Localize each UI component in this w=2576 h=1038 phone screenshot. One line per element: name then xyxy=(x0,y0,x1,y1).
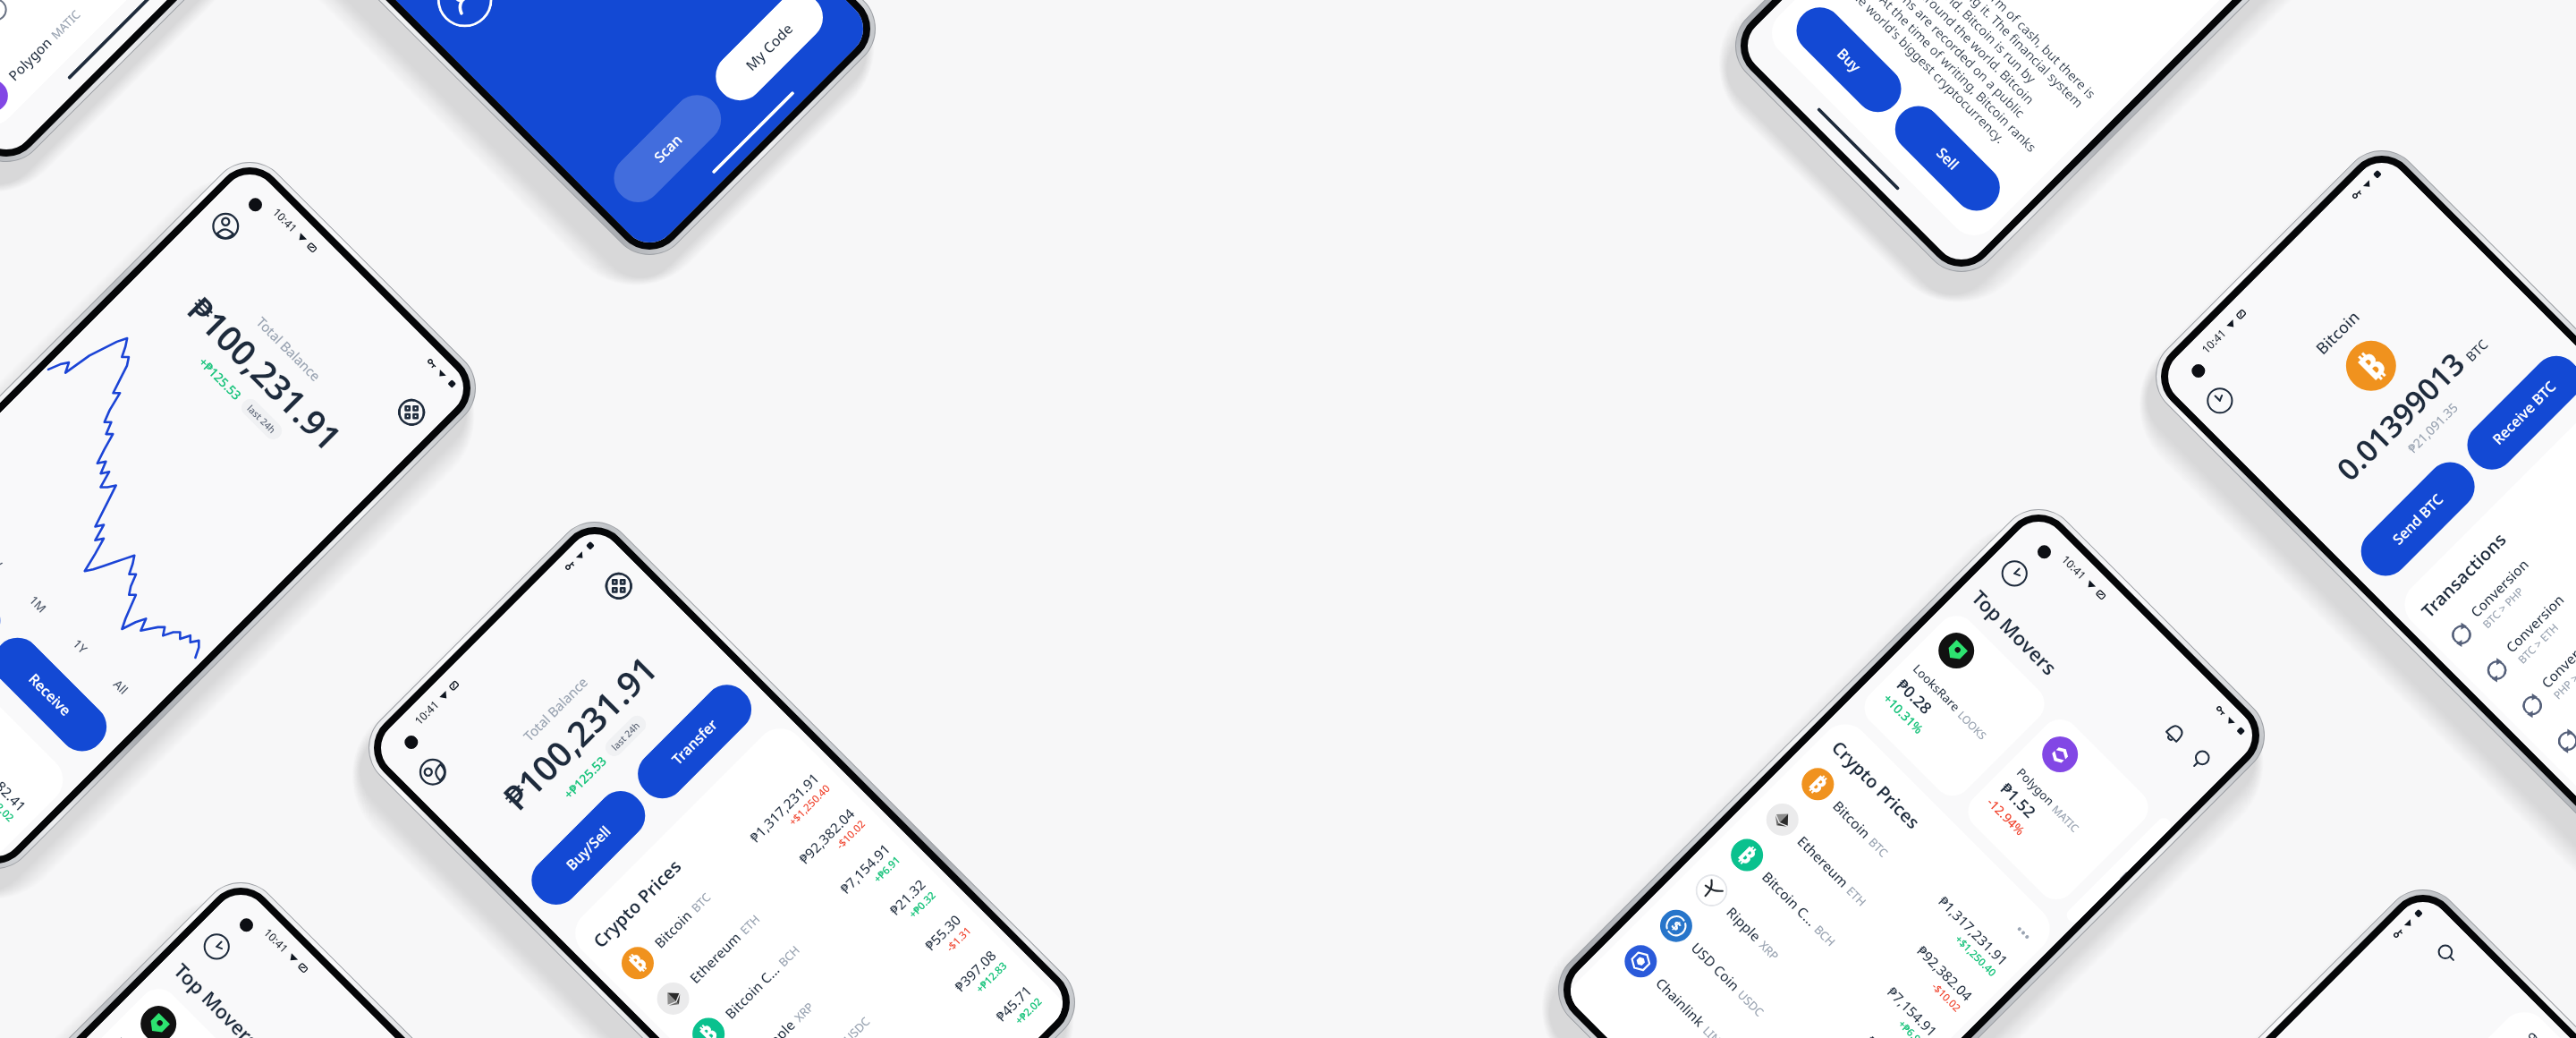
staticText: Bitcoin C... xyxy=(721,960,783,1023)
staticText: 10:41 xyxy=(2058,552,2090,584)
staticText: Bitcoin C... xyxy=(1758,867,1821,930)
button[interactable]: Ethereum xyxy=(0,636,2,853)
button[interactable]: Conversion xyxy=(2436,430,2576,661)
staticText: Polygon xyxy=(2013,765,2058,809)
button[interactable]: Ripple xyxy=(1682,861,1913,1038)
staticText: Receive xyxy=(25,669,76,720)
button[interactable]: Profile xyxy=(207,207,245,245)
button[interactable]: History xyxy=(198,928,236,966)
staticText: 1Y xyxy=(69,636,91,657)
staticText: Transfer xyxy=(667,714,722,769)
staticText: ₱21.32 xyxy=(885,875,929,919)
staticText: USD Coin xyxy=(1688,938,1744,995)
button[interactable]: Portfolio xyxy=(0,0,17,31)
button[interactable]: Ethereum xyxy=(1753,790,1984,1021)
staticText: ••• xyxy=(2011,920,2037,946)
button[interactable]: LooksRare xyxy=(59,981,255,1038)
button[interactable]: ₿ xyxy=(2064,815,2174,925)
staticText: LINK xyxy=(1700,1023,1730,1038)
staticText: ₱0.28 xyxy=(1892,674,1937,720)
staticText: ₱100,231.91 xyxy=(492,645,667,819)
button[interactable]: 1M xyxy=(14,580,62,629)
button[interactable]: ₿ xyxy=(679,833,910,1038)
staticText: 1W xyxy=(0,548,6,572)
button[interactable]: Buy/Sell xyxy=(522,781,655,914)
button[interactable]: Search xyxy=(2183,742,2219,778)
button[interactable]: ₿ xyxy=(1718,826,1948,1038)
button[interactable]: Conversion xyxy=(2471,466,2576,696)
staticText: LooksRare xyxy=(112,1034,166,1038)
staticText: XRP xyxy=(1756,937,1782,964)
button[interactable]: Scan xyxy=(604,85,731,212)
button[interactable]: Ethereum xyxy=(644,797,874,1028)
staticText: BCH xyxy=(1811,921,1839,950)
button[interactable]: $ xyxy=(750,904,980,1038)
button[interactable]: Conversion xyxy=(2506,501,2576,732)
staticText: USDC xyxy=(1734,987,1768,1020)
staticText: Top Movers xyxy=(169,957,265,1038)
staticText: Conversion xyxy=(2501,590,2568,656)
staticText: 0.01399013 xyxy=(2327,343,2473,489)
button[interactable]: Chainlink xyxy=(786,939,1016,1038)
staticText: ₱21,091.35 xyxy=(2404,399,2461,456)
staticText: Ripple xyxy=(756,1015,799,1038)
staticText: Bitcoin xyxy=(650,905,696,952)
button[interactable]: ₿ xyxy=(2328,1021,2558,1038)
button[interactable]: Search xyxy=(2430,935,2465,971)
staticText: ₱7,154.91 xyxy=(1884,982,1942,1038)
staticText: Total Balance xyxy=(253,313,325,385)
button[interactable]: 1Y xyxy=(57,624,103,669)
button[interactable]: Transfer xyxy=(628,675,761,808)
staticText: USD Coin xyxy=(791,1036,848,1038)
button[interactable]: Conversion xyxy=(2542,537,2576,767)
button[interactable]: Receive xyxy=(0,628,116,761)
button[interactable]: LooksRare xyxy=(821,974,1051,1038)
button[interactable]: LooksRare xyxy=(1856,608,2052,804)
staticText: +₱0.32 xyxy=(906,888,939,921)
staticText: Bitcoin is a digital form of cash, but t… xyxy=(1834,0,2104,174)
staticText: Buy/Sell xyxy=(562,821,615,875)
button[interactable]: Ripple xyxy=(715,868,945,1038)
button[interactable]: Notifications xyxy=(2157,716,2192,751)
button[interactable]: Polygon xyxy=(0,0,197,127)
staticText: ₿ xyxy=(1732,839,1763,870)
button[interactable]: ₿ xyxy=(0,601,37,831)
button[interactable]: ₿ xyxy=(609,762,839,992)
button[interactable]: History xyxy=(1996,554,2033,592)
staticText: Top Movers xyxy=(1966,584,2063,680)
staticText: +$1,250.40 xyxy=(1952,932,1999,980)
button[interactable]: History xyxy=(2201,382,2239,420)
button[interactable]: Sell xyxy=(1885,96,2009,220)
staticText: ₱92,382.04 xyxy=(795,804,858,868)
button[interactable]: My Code xyxy=(706,0,833,110)
staticText: Buy xyxy=(1833,44,1865,76)
button[interactable]: Chainlink xyxy=(1612,932,1842,1038)
staticText: Total Balance xyxy=(519,673,591,745)
staticText: BTC xyxy=(688,889,714,916)
staticText: Transactions xyxy=(2416,527,2512,623)
staticText: +₱125.53 xyxy=(560,752,610,802)
staticText: 10:41 xyxy=(260,925,292,957)
button[interactable]: Receive BTC xyxy=(2458,346,2576,479)
staticText: Ethereum xyxy=(1794,832,1853,891)
staticText: ₱92,382.04 xyxy=(1913,941,1977,1005)
button[interactable]: ₿ xyxy=(1789,755,2019,985)
button[interactable]: Profile xyxy=(414,753,452,791)
staticText: ₱21.32 xyxy=(1862,1032,1906,1038)
staticText: LooksRare xyxy=(1910,661,1964,715)
button[interactable]: Send BTC xyxy=(2351,453,2484,585)
staticText: Crypto Prices xyxy=(1827,735,1925,834)
staticText: Ripple xyxy=(1723,902,1766,945)
button[interactable]: Buy xyxy=(1787,0,1911,122)
staticText: All xyxy=(110,676,132,698)
staticText: 10:41 xyxy=(411,697,443,728)
staticText: ₱1,317,231.91 xyxy=(1935,892,2013,970)
button[interactable]: All xyxy=(98,664,144,710)
button[interactable]: $ xyxy=(1647,897,1877,1038)
staticText: Ethereum xyxy=(685,928,745,987)
button[interactable]: Scan QR code xyxy=(600,567,638,605)
button[interactable]: Scan QR code xyxy=(393,393,430,431)
button[interactable]: Send xyxy=(0,522,10,655)
button[interactable]: 1W xyxy=(0,536,18,584)
button[interactable]: Polygon xyxy=(1960,711,2156,908)
